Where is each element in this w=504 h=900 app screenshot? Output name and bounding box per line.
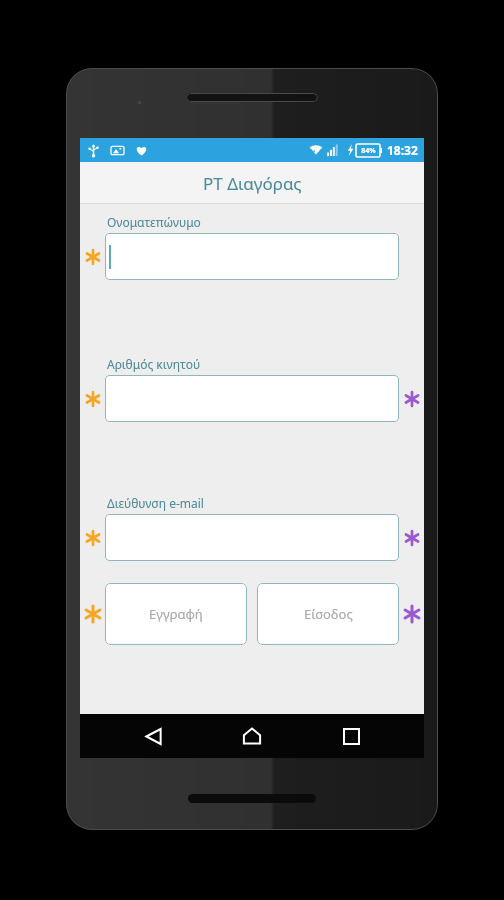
- staticText: 18:32: [387, 142, 418, 158]
- staticText: Εγγραφή: [149, 605, 203, 623]
- button[interactable]: Back: [127, 714, 179, 758]
- staticText: Διεύθυνση e-mail: [107, 495, 204, 511]
- staticText: Ονοματεπώνυμο: [107, 214, 201, 230]
- button[interactable]: [105, 233, 399, 280]
- staticText: 84%: [361, 146, 376, 156]
- button[interactable]: Είσοδος: [257, 583, 399, 645]
- staticText: Αριθμός κινητού: [107, 356, 201, 372]
- button[interactable]: Home: [226, 714, 278, 758]
- button[interactable]: Εγγραφή: [105, 583, 247, 645]
- button[interactable]: [105, 514, 399, 561]
- button[interactable]: [105, 375, 399, 422]
- staticText: PT Διαγόρας: [203, 172, 302, 195]
- button[interactable]: Recent apps: [325, 714, 377, 758]
- staticText: Είσοδος: [304, 605, 353, 623]
